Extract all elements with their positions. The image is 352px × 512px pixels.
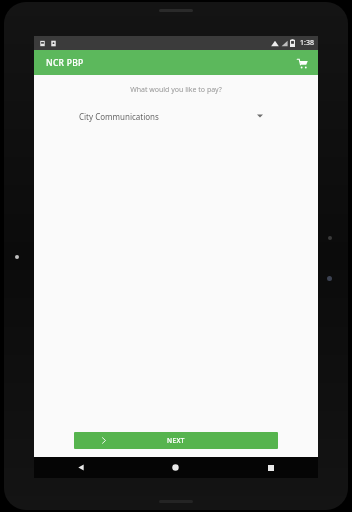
staticText: NCR PBP (46, 57, 84, 69)
staticText: City Communications (79, 111, 159, 122)
button[interactable]: Shopping cart (292, 53, 312, 73)
button[interactable]: Recent apps (223, 457, 318, 478)
staticText: What would you like to pay? (34, 85, 318, 95)
button[interactable]: NEXT (74, 432, 278, 449)
staticText: NEXT (167, 436, 185, 445)
staticText: 1:38 (300, 38, 314, 48)
button[interactable]: Home (128, 457, 223, 478)
button[interactable]: Back (34, 457, 128, 478)
button[interactable]: City Communications (34, 105, 318, 127)
